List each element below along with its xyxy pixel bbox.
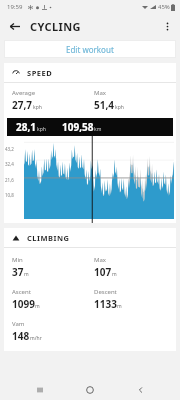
button[interactable]: Home bbox=[79, 380, 101, 400]
staticText: 32,4 bbox=[5, 161, 14, 167]
staticText: Descent bbox=[94, 288, 117, 296]
button[interactable]: Back bbox=[4, 16, 24, 36]
staticText: Ascent bbox=[12, 288, 31, 296]
staticText: 19:59 bbox=[7, 3, 23, 11]
staticText: km bbox=[94, 126, 102, 133]
staticText: 1099 bbox=[12, 297, 35, 311]
staticText: m/hr bbox=[30, 335, 42, 342]
staticText: kph bbox=[33, 104, 42, 111]
staticText: m bbox=[24, 271, 29, 278]
staticText: Min bbox=[12, 256, 23, 264]
staticText: CLIMBING bbox=[27, 233, 70, 243]
staticText: 109,58 bbox=[62, 120, 94, 134]
staticText: m bbox=[112, 271, 117, 278]
staticText: Edit workout bbox=[66, 44, 114, 55]
button[interactable]: More options bbox=[157, 16, 177, 36]
staticText: 10,8 bbox=[5, 192, 14, 198]
staticText: 21,6 bbox=[5, 177, 14, 183]
staticText: 37 bbox=[12, 265, 24, 279]
staticText: m bbox=[35, 303, 40, 310]
staticText: CYCLING bbox=[30, 19, 81, 34]
button[interactable]: Back bbox=[130, 380, 152, 400]
staticText: 148 bbox=[12, 329, 30, 343]
staticText: 1133 bbox=[94, 297, 117, 311]
staticText: Max bbox=[94, 89, 106, 97]
staticText: Average bbox=[12, 89, 36, 97]
staticText: 43,2 bbox=[5, 146, 14, 152]
staticText: kph bbox=[115, 104, 124, 111]
staticText: Max bbox=[94, 256, 106, 264]
staticText: kph bbox=[37, 126, 46, 133]
staticText: 107 bbox=[94, 265, 112, 279]
button[interactable]: Recents bbox=[29, 380, 51, 400]
staticText: 27,7 bbox=[12, 98, 33, 112]
staticText: m bbox=[117, 303, 122, 310]
staticText: SPEED bbox=[27, 68, 53, 78]
button[interactable]: Edit workout bbox=[4, 40, 176, 58]
staticText: 51,4 bbox=[94, 98, 115, 112]
staticText: 45% bbox=[158, 3, 170, 11]
staticText: 28,1 bbox=[16, 120, 37, 134]
staticText: Vam bbox=[12, 320, 25, 328]
